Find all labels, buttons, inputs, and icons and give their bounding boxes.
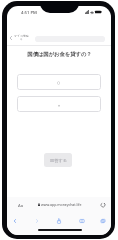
staticText: www.app.moneychat.life <box>41 202 82 207</box>
button[interactable]: Reload <box>98 200 107 209</box>
button[interactable]: ○ <box>17 74 101 90</box>
staticText: マイコ学院 <box>14 34 29 38</box>
staticText: × <box>58 103 61 108</box>
staticText: ○ <box>57 81 61 85</box>
button[interactable]: Bookmarks <box>76 215 87 226</box>
staticText: 国債は国がお金を貸すの？ <box>27 51 92 58</box>
button[interactable]: Text size <box>16 201 25 210</box>
staticText: 4:51 PM <box>21 10 37 16</box>
button[interactable]: Back <box>9 215 20 226</box>
button[interactable]: Tabs <box>97 215 108 226</box>
staticText: 今 <box>20 38 23 41</box>
button[interactable]: Forward <box>31 215 42 226</box>
button[interactable]: × <box>17 96 101 112</box>
staticText: Aa <box>18 203 24 209</box>
staticText: 回答する <box>50 158 67 163</box>
button[interactable]: Back to app <box>7 34 15 42</box>
button[interactable]: 回答する <box>44 153 72 167</box>
button[interactable]: Share <box>53 215 64 226</box>
